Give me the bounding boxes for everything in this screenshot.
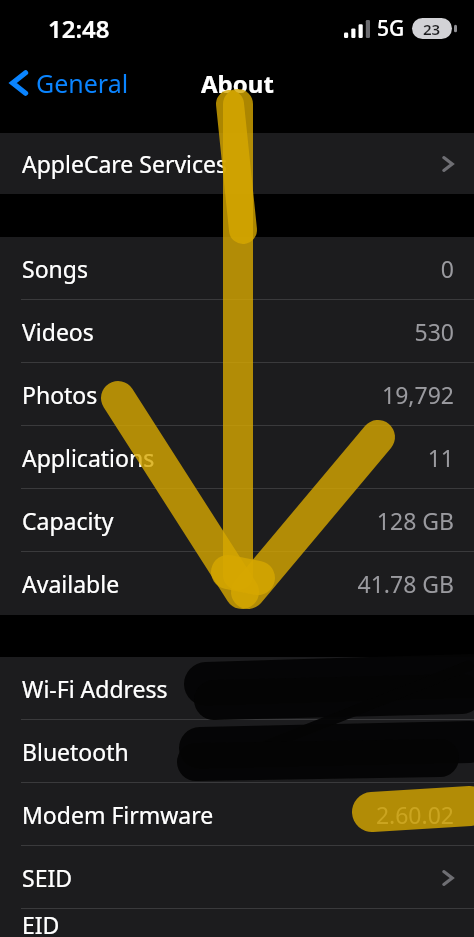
staticText: Capacity <box>22 505 114 536</box>
staticText: Available <box>22 568 120 599</box>
button[interactable]: Photos <box>0 363 474 426</box>
staticText: Photos <box>22 379 98 410</box>
staticText: 19,792 <box>382 379 454 410</box>
button[interactable]: Capacity <box>0 489 474 552</box>
staticText: Bluetooth <box>22 736 129 767</box>
button[interactable]: Applications <box>0 426 474 489</box>
staticText: EID <box>22 909 60 937</box>
button[interactable]: EID <box>0 909 474 937</box>
staticText: Modem Firmware <box>22 799 214 830</box>
staticText: 41.78 GB <box>357 568 454 599</box>
staticText: 12:48 <box>48 12 110 45</box>
button[interactable]: Available <box>0 552 474 615</box>
button[interactable]: Modem Firmware <box>0 783 474 846</box>
button[interactable]: Bluetooth <box>0 720 474 783</box>
staticText: 11 <box>427 442 454 473</box>
staticText: 128 GB <box>376 505 454 536</box>
button[interactable]: General <box>10 66 129 100</box>
staticText: Applications <box>22 442 155 473</box>
button[interactable]: Videos <box>0 300 474 363</box>
button[interactable]: SEID <box>0 846 474 909</box>
staticText: Songs <box>22 253 88 284</box>
staticText: 0 <box>440 253 454 284</box>
staticText: AppleCare Services <box>22 148 228 179</box>
staticText: 5G <box>377 14 405 43</box>
staticText: 2.60.02 <box>375 799 454 830</box>
staticText: About <box>201 67 274 100</box>
staticText: 23 <box>423 19 441 39</box>
staticText: Wi-Fi Address <box>22 673 168 704</box>
button[interactable]: Wi-Fi Address <box>0 657 474 720</box>
button[interactable]: Songs <box>0 237 474 300</box>
staticText: General <box>36 66 129 100</box>
staticText: 530 <box>414 316 454 347</box>
staticText: Videos <box>22 316 94 347</box>
button[interactable]: AppleCare Services <box>0 133 474 194</box>
staticText: SEID <box>22 862 73 893</box>
